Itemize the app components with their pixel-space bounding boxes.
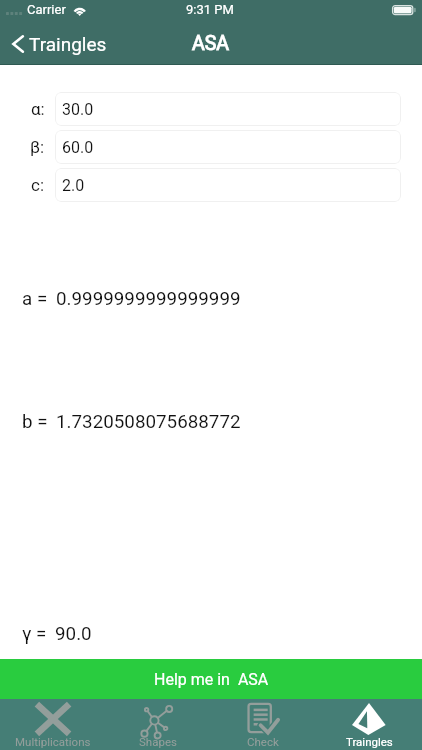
staticText: Traingles [29, 33, 107, 55]
staticText: 2.0 [62, 176, 85, 195]
staticText: α: [31, 99, 45, 119]
staticText: Help me in ASA [154, 670, 269, 689]
staticText: γ = [22, 623, 47, 645]
staticText: 0.9999999999999999 [56, 288, 241, 310]
staticText: Multiplications [15, 735, 91, 748]
button[interactable]: Check [210, 699, 316, 750]
button[interactable]: 60.0 [55, 130, 401, 164]
staticText: 60.0 [62, 138, 94, 157]
button[interactable]: Traingles [316, 699, 422, 750]
staticText: a = [22, 288, 48, 310]
staticText: ASA [192, 32, 230, 55]
button[interactable]: Multiplications [0, 699, 105, 750]
staticText: 30.0 [62, 100, 94, 119]
button[interactable]: Back [0, 22, 107, 65]
staticText: b = [22, 411, 48, 433]
staticText: β: [30, 137, 45, 157]
button[interactable]: 2.0 [55, 168, 401, 202]
button[interactable]: Help me in ASA [0, 659, 422, 699]
button[interactable]: Shapes [105, 699, 210, 750]
button[interactable]: 30.0 [55, 92, 401, 126]
staticText: Check [247, 735, 279, 748]
other: Back [11, 33, 25, 55]
staticText: c: [31, 175, 45, 195]
staticText: Shapes [139, 735, 177, 748]
staticText: 90.0 [55, 623, 92, 645]
staticText: 1.7320508075688772 [56, 411, 241, 433]
staticText: Carrier [27, 2, 66, 17]
staticText: Traingles [346, 735, 393, 748]
staticText: 9:31 PM [186, 2, 234, 17]
